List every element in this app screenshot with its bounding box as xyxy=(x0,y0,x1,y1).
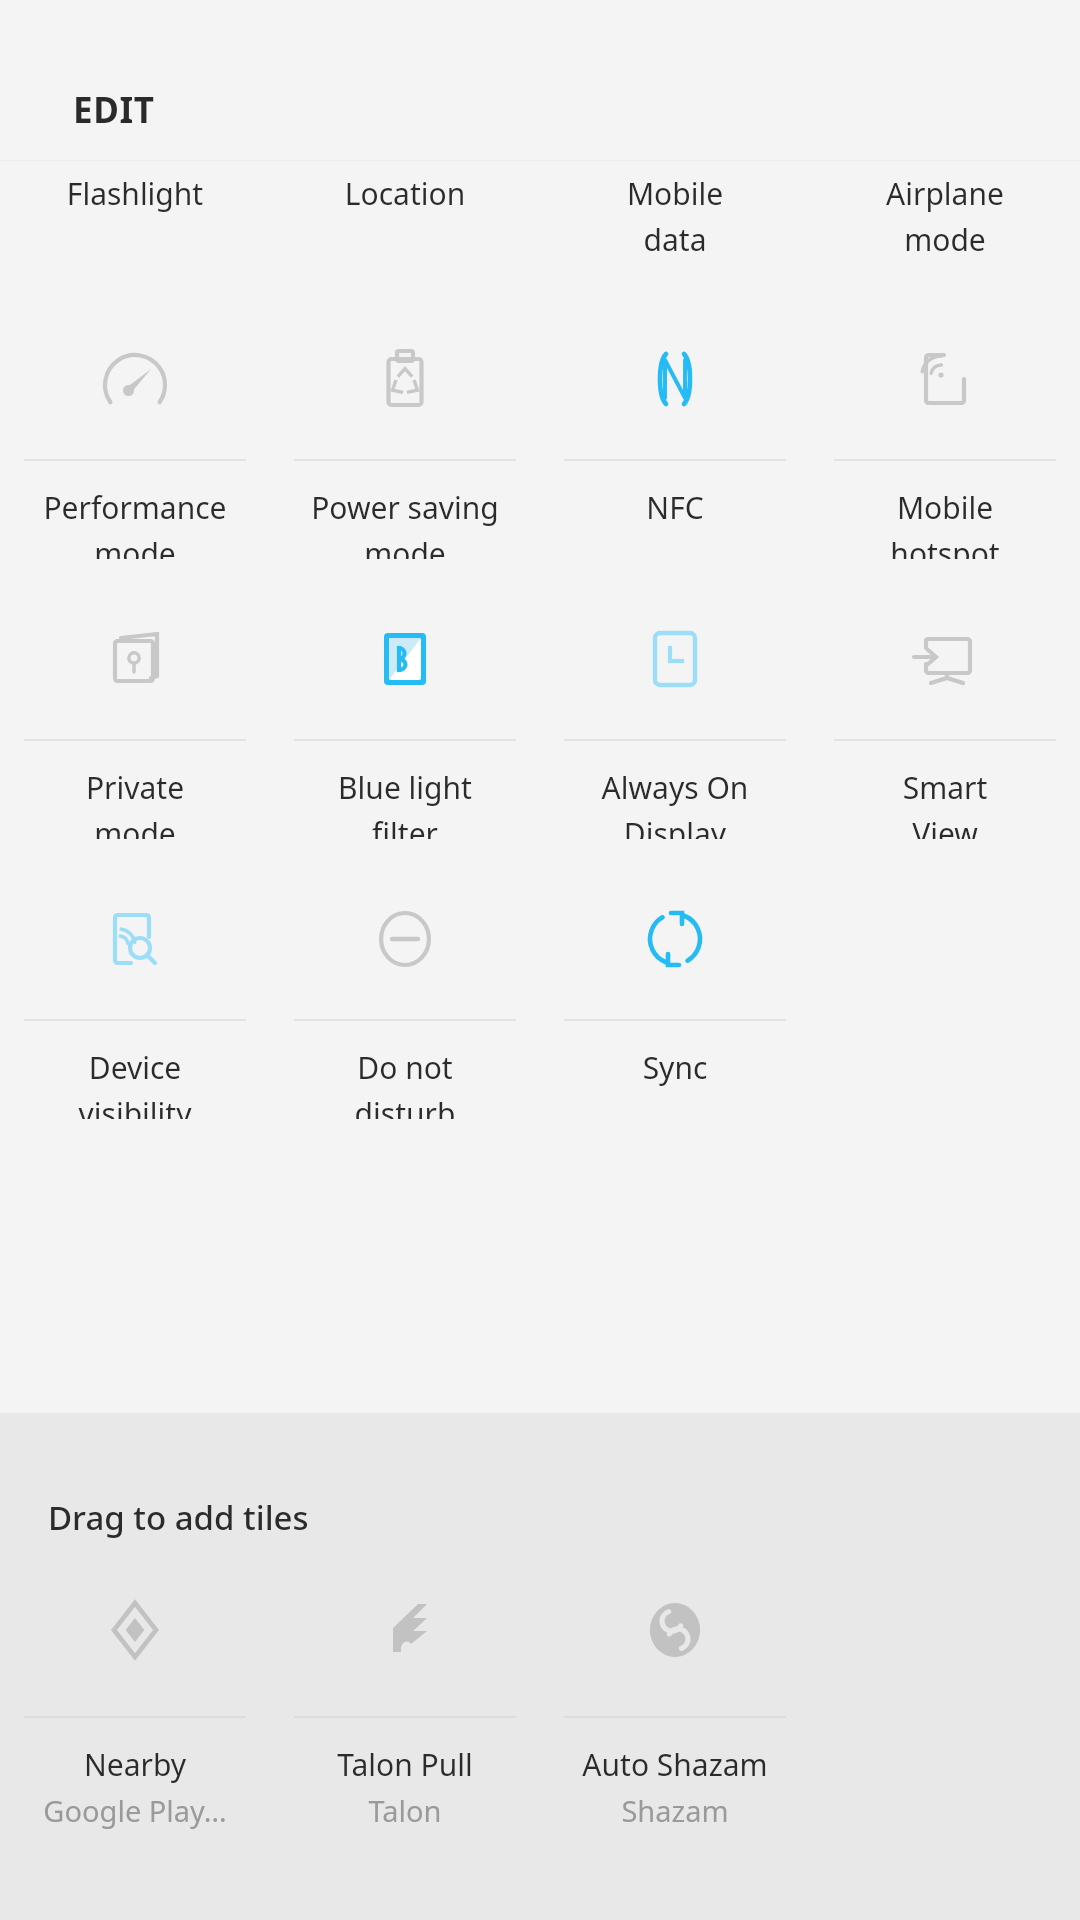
staticText: Shazam xyxy=(545,1791,805,1830)
staticText: Sync xyxy=(550,1047,800,1088)
staticText: Device visibility xyxy=(10,1047,260,1119)
staticText: Smart View xyxy=(820,767,1070,839)
button[interactable]: NFC xyxy=(540,279,810,559)
staticText: Blue light filter xyxy=(280,767,530,839)
button[interactable]: Auto Shazam xyxy=(540,1582,810,1830)
button[interactable]: Talon Pull xyxy=(270,1582,540,1830)
staticText: Flashlight xyxy=(10,173,260,214)
button[interactable]: Smart View xyxy=(810,559,1080,839)
staticText: Drag to add tiles xyxy=(48,1495,309,1540)
staticText: Power saving mode xyxy=(280,487,530,559)
button[interactable]: Device visibility xyxy=(0,839,270,1119)
button[interactable]: Airplane mode xyxy=(810,161,1080,279)
button[interactable]: Always On Display xyxy=(540,559,810,839)
staticText: Do not disturb xyxy=(280,1047,530,1119)
staticText: Performance mode xyxy=(10,487,260,559)
staticText: Private mode xyxy=(10,767,260,839)
button[interactable]: Nearby xyxy=(0,1582,270,1830)
staticText: Nearby xyxy=(5,1744,265,1785)
staticText: EDIT xyxy=(73,86,155,134)
button[interactable]: Sync xyxy=(540,839,810,1119)
button[interactable]: Mobile data xyxy=(540,161,810,279)
staticText: Talon Pull xyxy=(275,1744,535,1785)
button[interactable]: Mobile hotspot xyxy=(810,279,1080,559)
staticText: NFC xyxy=(550,487,800,528)
staticText: Mobile data xyxy=(550,173,800,260)
button[interactable]: Location xyxy=(270,161,540,279)
button[interactable]: Private mode xyxy=(0,559,270,839)
staticText: Google Play… xyxy=(5,1791,265,1830)
button[interactable]: Do not disturb xyxy=(270,839,540,1119)
staticText: Mobile hotspot xyxy=(820,487,1070,559)
button[interactable]: Performance mode xyxy=(0,279,270,559)
staticText: Airplane mode xyxy=(820,173,1070,260)
button[interactable]: Blue light filter xyxy=(270,559,540,839)
button[interactable]: Power saving mode xyxy=(270,279,540,559)
staticText: Always On Display xyxy=(550,767,800,839)
staticText: Location xyxy=(280,173,530,214)
staticText: Talon xyxy=(275,1791,535,1830)
button[interactable]: Flashlight xyxy=(0,161,270,279)
staticText: Auto Shazam xyxy=(545,1744,805,1785)
